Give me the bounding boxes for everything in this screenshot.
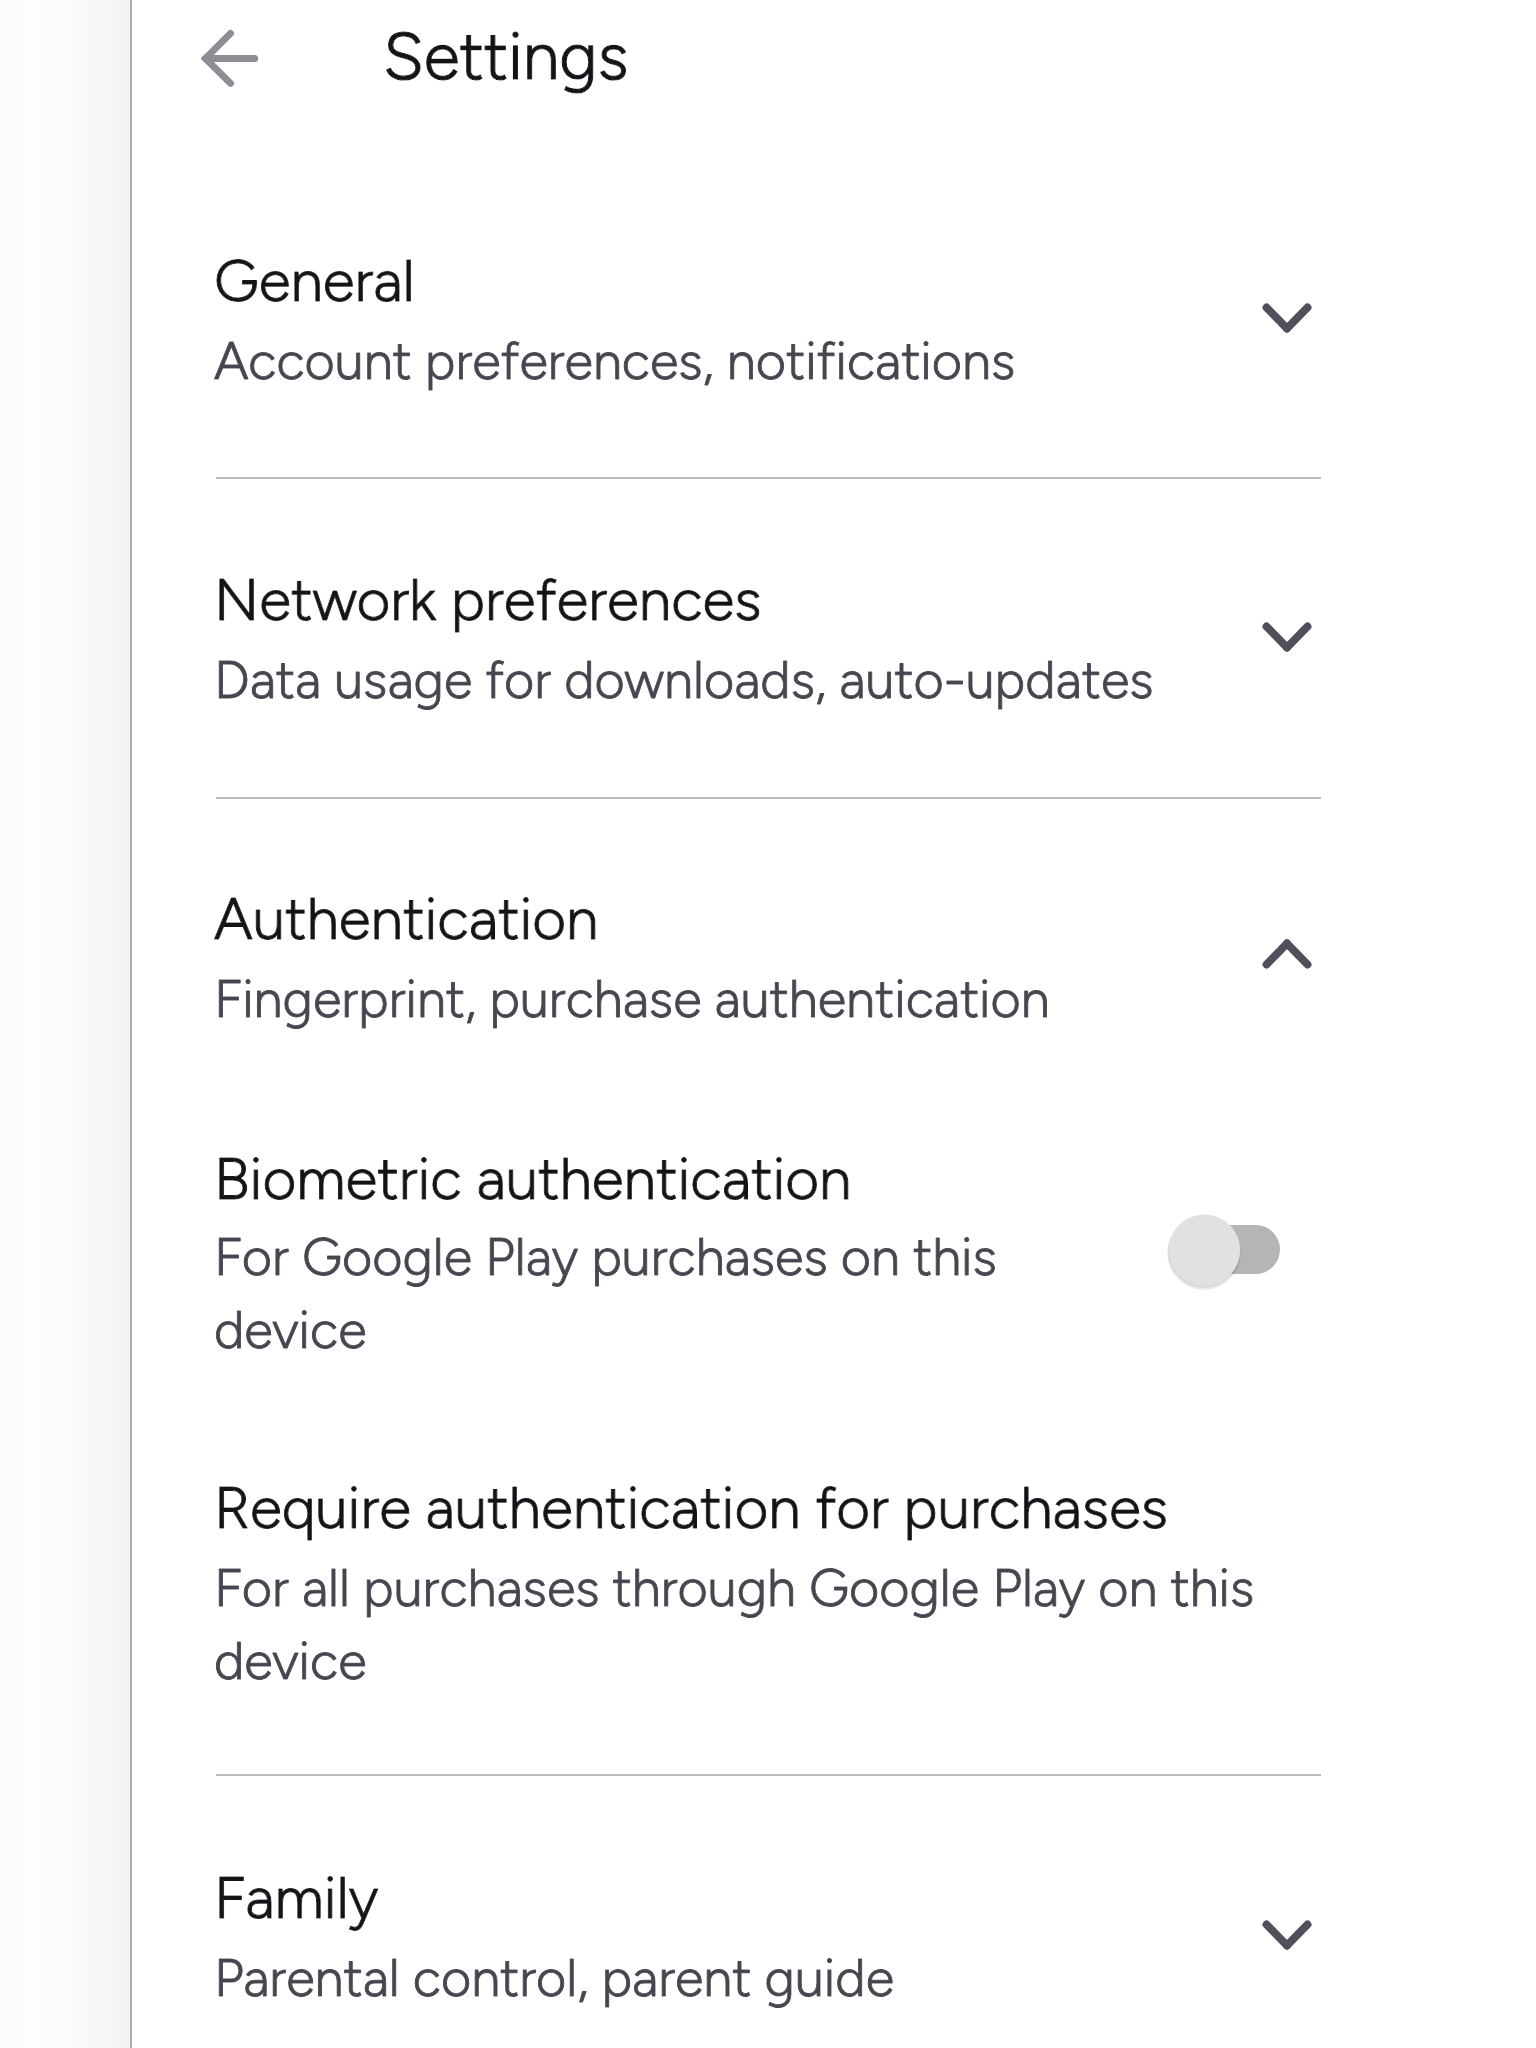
button[interactable]: Biometric authentication switch, off bbox=[1150, 1200, 1310, 1300]
staticText: Family bbox=[214, 1863, 379, 1933]
staticText: Parental control, parent guide bbox=[214, 1946, 895, 2009]
button[interactable]: General bbox=[214, 246, 1324, 392]
staticText: Require authentication for purchases bbox=[214, 1473, 1168, 1543]
staticText: Network preferences bbox=[214, 565, 762, 635]
staticText: Family bbox=[214, 1863, 379, 1933]
staticText: General bbox=[214, 246, 415, 316]
staticText: Fingerprint, purchase authentication bbox=[214, 967, 1050, 1030]
staticText: Biometric authentication bbox=[214, 1144, 852, 1214]
button[interactable]: Authentication bbox=[214, 884, 1324, 1030]
staticText: For Google Play purchases on this device bbox=[214, 1225, 1034, 1361]
staticText: Settings bbox=[383, 16, 629, 95]
staticText: Parental control, parent guide bbox=[214, 1946, 895, 2009]
button[interactable]: Expand Network preferences bbox=[1239, 595, 1335, 679]
staticText: For Google Play purchases on this device bbox=[214, 1225, 1034, 1361]
staticText: Fingerprint, purchase authentication bbox=[214, 967, 1050, 1030]
button[interactable]: Network preferences bbox=[214, 565, 1324, 711]
button[interactable]: Expand General bbox=[1239, 276, 1335, 360]
button[interactable]: Back bbox=[180, 8, 280, 108]
button[interactable]: Require authentication for purchases bbox=[214, 1473, 1289, 1692]
staticText: Require authentication for purchases bbox=[214, 1473, 1168, 1543]
staticText: Network preferences bbox=[214, 565, 762, 635]
staticText: Authentication bbox=[214, 884, 599, 954]
button[interactable]: Family bbox=[214, 1863, 1324, 2009]
staticText: Settings bbox=[383, 16, 629, 95]
staticText: Data usage for downloads, auto-updates bbox=[214, 648, 1154, 711]
staticText: For all purchases through Google Play on… bbox=[214, 1556, 1289, 1692]
staticText: Biometric authentication bbox=[214, 1144, 852, 1214]
button[interactable]: Expand Family bbox=[1239, 1893, 1335, 1977]
staticText: General bbox=[214, 246, 415, 316]
staticText: For all purchases through Google Play on… bbox=[214, 1556, 1289, 1692]
staticText: Data usage for downloads, auto-updates bbox=[214, 648, 1154, 711]
button[interactable]: Collapse Authentication bbox=[1239, 912, 1335, 996]
staticText: Account preferences, notifications bbox=[214, 329, 1016, 392]
staticText: Authentication bbox=[214, 884, 599, 954]
staticText: Account preferences, notifications bbox=[214, 329, 1016, 392]
button[interactable]: Biometric authentication bbox=[214, 1144, 1034, 1361]
